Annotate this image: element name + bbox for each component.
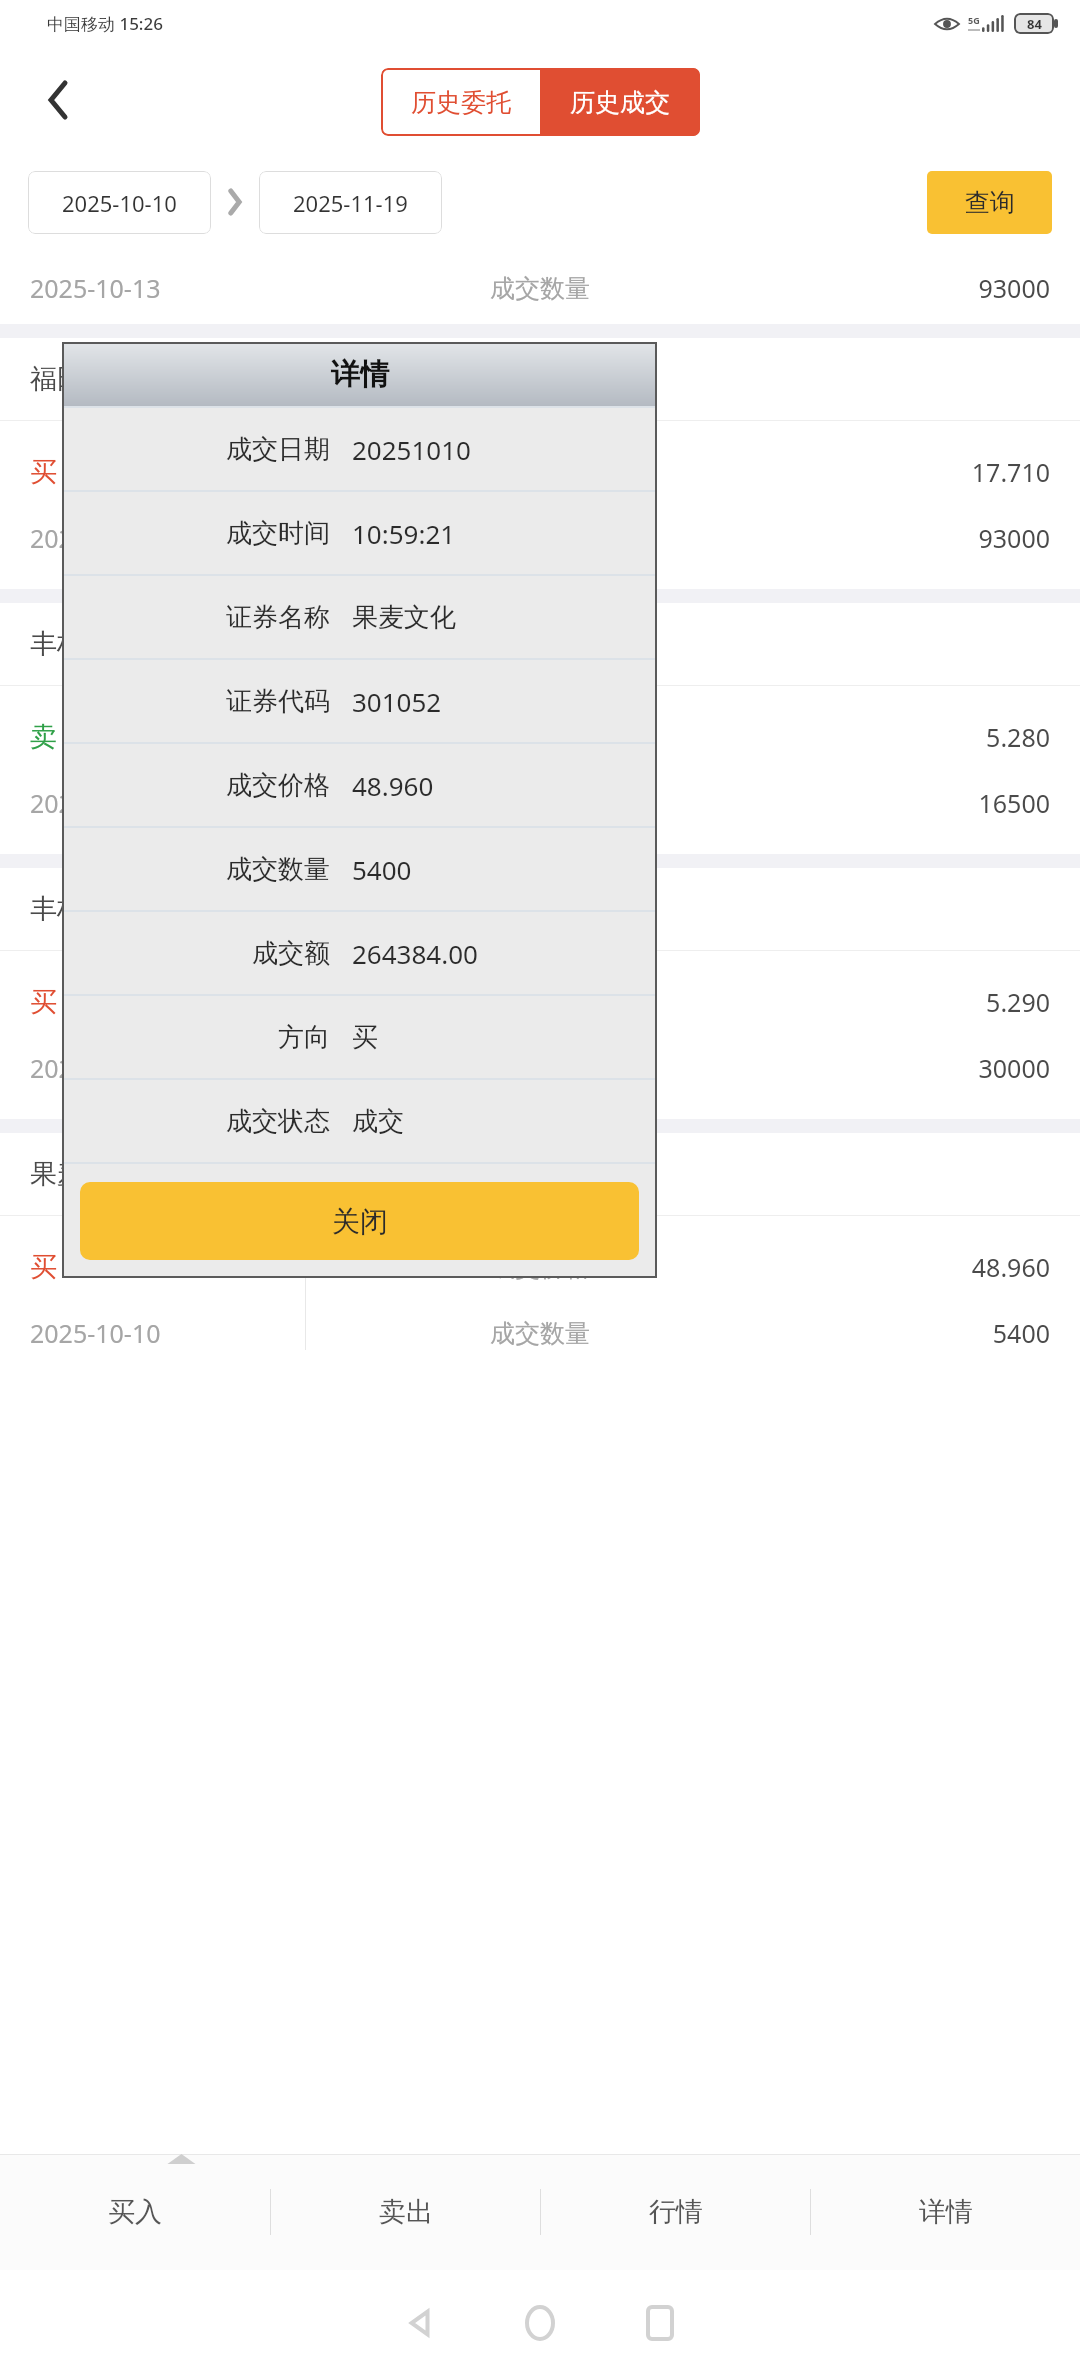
staticText: 成交数量 — [370, 273, 710, 304]
staticText: 果麦文化 — [30, 1157, 138, 1191]
staticText: 5G — [968, 14, 980, 26]
staticText: 成交数量 — [370, 523, 710, 554]
staticText: 关闭 — [332, 1204, 388, 1239]
staticText: 详情 — [331, 356, 389, 393]
button[interactable]: Home — [480, 2270, 600, 2376]
button[interactable]: 历史成交 — [540, 68, 700, 136]
staticText: 历史委托 — [411, 87, 511, 118]
staticText: 48.960 — [352, 768, 434, 803]
staticText: 301052 — [352, 684, 442, 719]
staticText: 2025-11-19 — [293, 188, 408, 218]
staticText: 93000 — [710, 271, 1050, 305]
button[interactable]: Back — [36, 78, 80, 122]
staticText: 买 — [352, 1021, 378, 1054]
staticText: 2025-10-11 — [30, 1051, 370, 1085]
staticText: 查询 — [965, 187, 1015, 218]
staticText: 93000 — [710, 521, 1050, 555]
staticText: 成交 — [352, 1105, 404, 1138]
staticText: 2025-10-10 — [62, 188, 177, 218]
staticText: 证券名称 — [62, 601, 330, 634]
staticText: 丰林 — [30, 627, 84, 661]
staticText: 成交数量 — [62, 853, 330, 886]
button[interactable]: 丰林 — [0, 589, 1080, 854]
button[interactable]: 2025-10-10 — [28, 171, 211, 234]
button[interactable]: 2025-11-19 — [259, 171, 442, 234]
button[interactable]: 福田 — [0, 324, 1080, 589]
button[interactable]: 买入 — [0, 2154, 270, 2270]
staticText: 20251010 — [352, 432, 471, 467]
staticText: 5.290 — [710, 985, 1050, 1019]
staticText: 成交日期 — [62, 433, 330, 466]
staticText: 成交价格 — [62, 769, 330, 802]
staticText: 买 — [30, 985, 370, 1019]
staticText: 48.960 — [710, 1250, 1050, 1284]
button[interactable]: Back — [360, 2270, 480, 2376]
staticText: 2025-10-10 — [30, 1316, 370, 1350]
staticText: 成交状态 — [62, 1105, 330, 1138]
button[interactable]: 关闭 — [80, 1182, 639, 1260]
staticText: 卖出 — [379, 2195, 433, 2229]
staticText: 果麦文化 — [352, 601, 456, 634]
staticText: 84 — [1027, 15, 1042, 33]
staticText: 17.710 — [710, 455, 1050, 489]
staticText: 买 — [30, 455, 370, 489]
button[interactable]: 详情 — [811, 2154, 1080, 2270]
staticText: 行情 — [649, 2195, 703, 2229]
button[interactable]: 卖出 — [271, 2154, 540, 2270]
staticText: 成交额 — [62, 937, 330, 970]
staticText: 2025-10-13 — [30, 271, 370, 305]
staticText: 5400 — [710, 1316, 1050, 1350]
staticText: 买 — [30, 1250, 370, 1284]
staticText: 成交价格 — [370, 457, 710, 488]
staticText: 中国移动 15:26 — [47, 12, 163, 35]
staticText: 方向 — [62, 1021, 330, 1054]
staticText: 成交价格 — [370, 987, 710, 1018]
staticText: 买入 — [108, 2195, 162, 2229]
staticText: 卖 — [30, 720, 370, 754]
staticText: 成交价格 — [370, 722, 710, 753]
staticText: 成交数量 — [370, 1053, 710, 1084]
staticText: 历史成交 — [570, 87, 670, 118]
staticText: 成交时间 — [62, 517, 330, 550]
staticText: 成交数量 — [370, 788, 710, 819]
staticText: 264384.00 — [352, 936, 478, 971]
staticText: 16500 — [710, 786, 1050, 820]
staticText: 福田 — [30, 362, 84, 396]
button[interactable]: 查询 — [927, 171, 1052, 234]
staticText: 30000 — [710, 1051, 1050, 1085]
staticText: 证券代码 — [62, 685, 330, 718]
button[interactable]: 果麦文化 — [0, 1119, 1080, 1384]
staticText: 10:59:21 — [352, 516, 456, 551]
button[interactable]: 历史委托 — [381, 68, 540, 136]
button[interactable]: Recents — [600, 2270, 720, 2376]
staticText: 丰林 — [30, 892, 84, 926]
staticText: 成交价格 — [370, 1252, 710, 1283]
staticText: 2025-10-13 — [30, 521, 370, 555]
staticText: 成交数量 — [370, 1318, 710, 1349]
button[interactable]: 行情 — [541, 2154, 810, 2270]
staticText: 详情 — [919, 2195, 973, 2229]
staticText: 2025-10-13 — [30, 786, 370, 820]
button[interactable]: 丰林 — [0, 854, 1080, 1119]
staticText: 5400 — [352, 852, 412, 887]
staticText: 5.280 — [710, 720, 1050, 754]
